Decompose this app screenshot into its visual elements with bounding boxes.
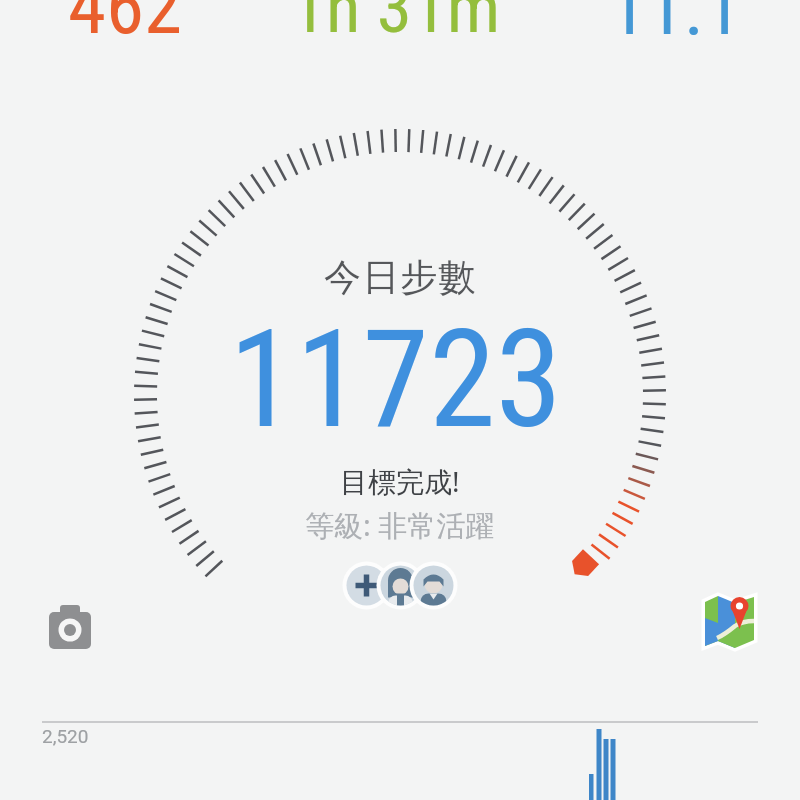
staticText: 目標完成! bbox=[340, 462, 460, 500]
button[interactable] bbox=[698, 585, 762, 649]
staticText: 今日步數 bbox=[324, 254, 477, 301]
staticText: 11.1 bbox=[609, 0, 742, 52]
button[interactable] bbox=[409, 561, 458, 610]
staticText: 11723 bbox=[229, 301, 563, 459]
staticText: 1h 31m bbox=[291, 0, 501, 49]
staticText: 等級: 非常活躍 bbox=[305, 505, 495, 545]
staticText: 2,520 bbox=[42, 725, 89, 747]
staticText: 462 bbox=[68, 0, 183, 52]
button[interactable] bbox=[40, 600, 100, 660]
button[interactable] bbox=[376, 561, 425, 610]
button[interactable] bbox=[342, 561, 391, 610]
